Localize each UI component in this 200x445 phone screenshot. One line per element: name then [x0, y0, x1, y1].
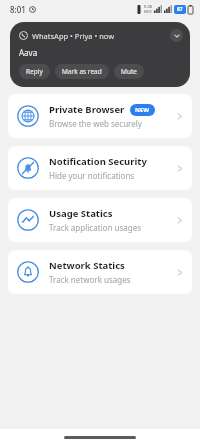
button[interactable]: Mute: [114, 64, 144, 79]
staticText: Browse the web securely: [49, 118, 142, 129]
staticText: WhatsApp • Priya • now: [32, 31, 115, 41]
button[interactable]: Usage Statics: [8, 198, 192, 242]
staticText: Reply: [26, 67, 43, 76]
staticText: Track application usages: [49, 222, 141, 233]
button[interactable]: Network Statics: [8, 250, 192, 294]
staticText: 87: [177, 6, 183, 13]
button[interactable]: Reply: [19, 64, 50, 79]
staticText: Hide your notifications: [49, 170, 135, 181]
staticText: Notification Security: [49, 155, 147, 168]
staticText: KB/S: [144, 9, 152, 14]
staticText: 5.00: [144, 4, 152, 9]
staticText: Mute: [121, 67, 137, 76]
staticText: Aava: [19, 47, 38, 58]
staticText: NEW: [135, 106, 150, 114]
staticText: Usage Statics: [49, 207, 113, 220]
staticText: Network Statics: [49, 259, 125, 272]
staticText: Private Browser: [49, 103, 125, 116]
button[interactable]: Mark as read: [55, 64, 109, 79]
staticText: Mark as read: [62, 67, 102, 76]
button[interactable]: WhatsApp • Priya • now: [10, 22, 190, 87]
staticText: Track network usages: [49, 274, 131, 285]
button[interactable]: Notification Security: [8, 146, 192, 190]
button[interactable]: Private Browser: [8, 94, 192, 138]
staticText: 8:01: [10, 4, 26, 15]
button[interactable]: Expand notification: [170, 29, 183, 42]
